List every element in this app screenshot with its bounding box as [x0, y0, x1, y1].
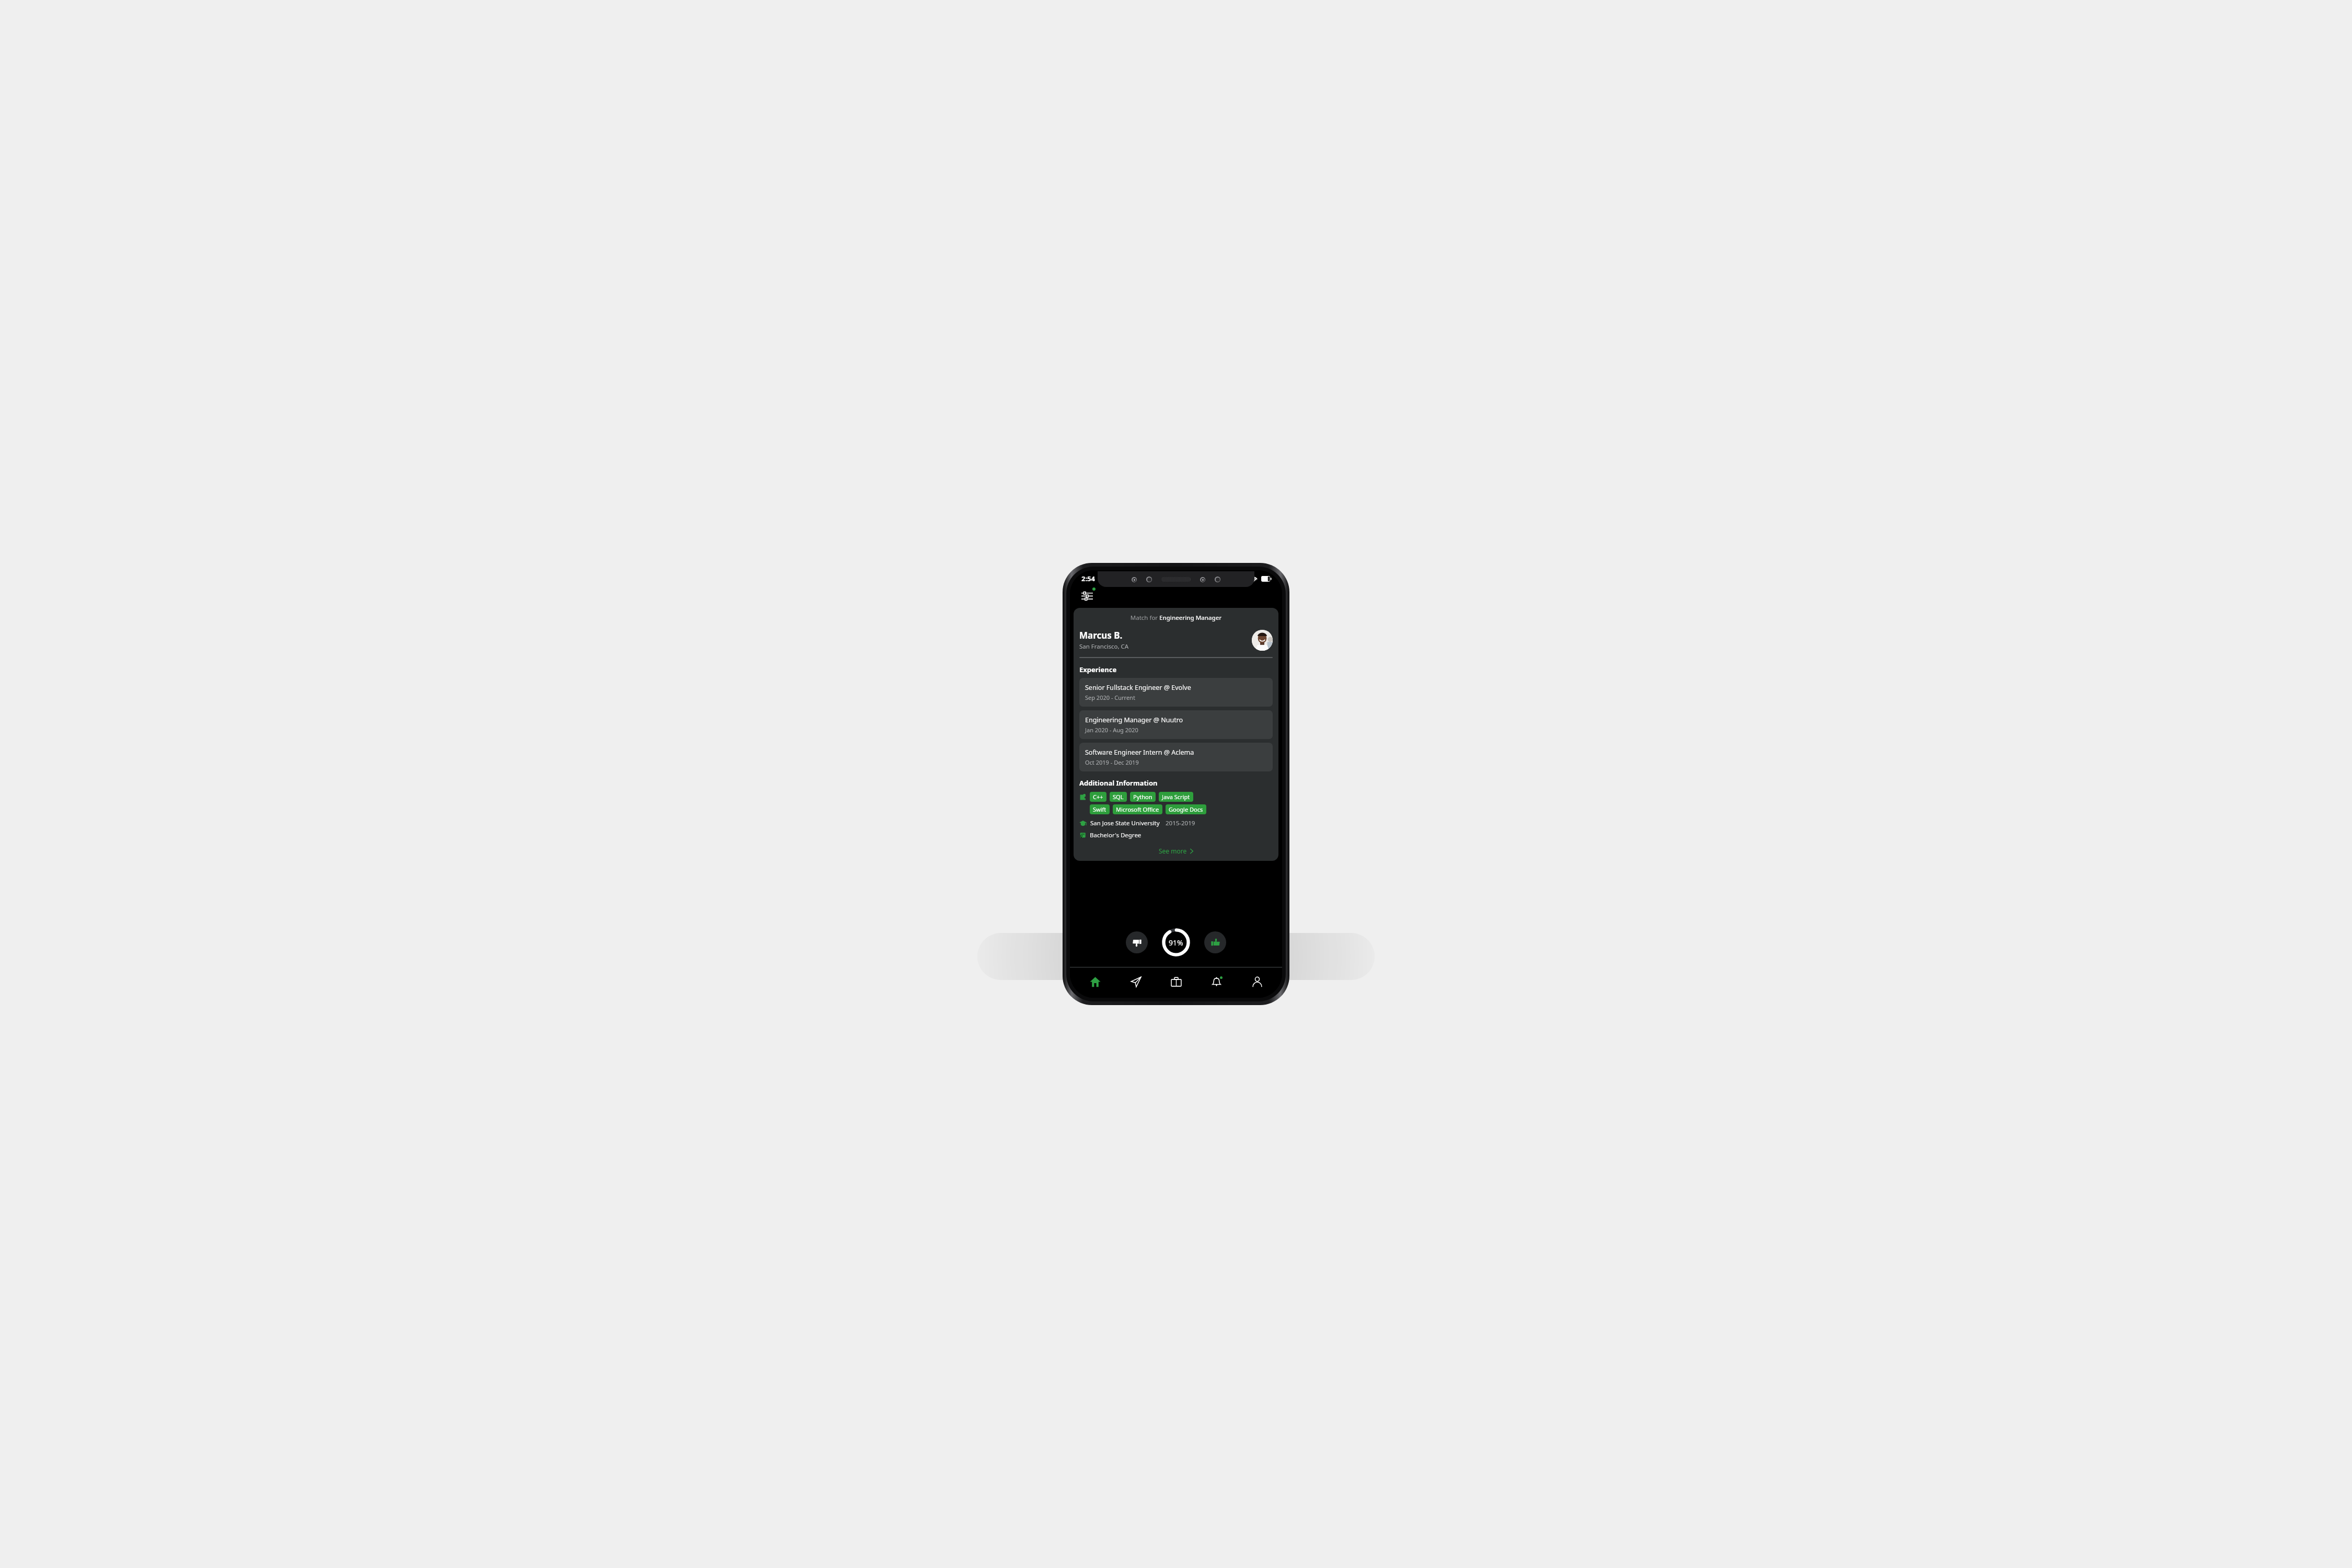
- button[interactable]: Java Script: [1159, 792, 1193, 802]
- staticText: C++: [1093, 793, 1103, 801]
- button[interactable]: C++: [1090, 792, 1106, 802]
- button[interactable]: Match for Engineering Manager: [1074, 608, 1278, 861]
- staticText: Java Script: [1162, 793, 1190, 801]
- staticText: San Francisco, CA: [1079, 642, 1129, 651]
- staticText: Python: [1133, 793, 1152, 801]
- button[interactable]: Engineering Manager @ Nuutro: [1079, 710, 1273, 739]
- button[interactable]: Accept candidate: [1204, 931, 1226, 953]
- staticText: Senior Fullstack Engineer @ Evolve: [1085, 683, 1191, 692]
- staticText: 2:54: [1081, 574, 1095, 583]
- button[interactable]: Reject candidate: [1126, 931, 1148, 953]
- staticText: Experience: [1079, 665, 1117, 674]
- button[interactable]: Profile photo of Marcus B.: [1252, 630, 1273, 651]
- button[interactable]: Senior Fullstack Engineer @ Evolve: [1079, 678, 1273, 707]
- staticText: 2015-2019: [1166, 819, 1195, 827]
- button[interactable]: Python: [1130, 792, 1156, 802]
- button[interactable]: See more: [1074, 847, 1278, 855]
- button[interactable]: Profile: [1242, 969, 1272, 994]
- button[interactable]: Jobs: [1161, 969, 1191, 994]
- staticText: Software Engineer Intern @ Aclema: [1085, 748, 1194, 757]
- button[interactable]: Messages: [1121, 969, 1151, 994]
- staticText: Jan 2020 - Aug 2020: [1085, 726, 1138, 734]
- button[interactable]: Notifications: [1201, 969, 1231, 994]
- button[interactable]: Home: [1080, 969, 1110, 994]
- staticText: Engineering Manager @ Nuutro: [1085, 716, 1183, 724]
- staticText: SQL: [1113, 793, 1124, 801]
- button[interactable]: SQL: [1110, 792, 1127, 802]
- staticText: Additional Information: [1079, 778, 1158, 788]
- staticText: Marcus B.: [1079, 629, 1123, 641]
- staticText: Microsoft Office: [1116, 805, 1159, 813]
- button[interactable]: Swift: [1090, 804, 1110, 814]
- staticText: Sep 2020 - Current: [1085, 694, 1135, 701]
- staticText: See more: [1159, 847, 1187, 855]
- button[interactable]: Google Docs: [1166, 804, 1206, 814]
- staticText: San Jose State University: [1090, 819, 1160, 827]
- staticText: 91%: [1169, 938, 1183, 948]
- button[interactable]: Software Engineer Intern @ Aclema: [1079, 743, 1273, 771]
- staticText: Google Docs: [1169, 805, 1203, 813]
- staticText: Swift: [1093, 805, 1106, 813]
- button[interactable]: Filters: [1078, 587, 1096, 605]
- staticText: Match for Engineering Manager: [1074, 614, 1278, 622]
- button[interactable]: Microsoft Office: [1113, 804, 1162, 814]
- button[interactable]: Match score 91 percent: [1160, 927, 1192, 958]
- staticText: Oct 2019 - Dec 2019: [1085, 758, 1139, 766]
- staticText: Bachelor's Degree: [1090, 831, 1142, 839]
